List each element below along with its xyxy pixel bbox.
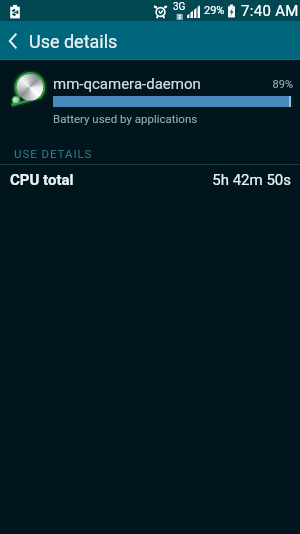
staticText: 89% [0, 78, 293, 91]
staticText: CPU total [10, 171, 74, 189]
staticText: 5h 42m 50s [75, 171, 291, 189]
button[interactable]: Back [0, 21, 25, 60]
staticText: 29% [204, 4, 225, 17]
staticText: ↕ [176, 13, 184, 20]
staticText: Battery used by applications [53, 112, 198, 125]
staticText: 3G [173, 1, 186, 13]
staticText: Use details [29, 31, 118, 52]
staticText: mm-qcamera-daemon [53, 75, 201, 93]
button[interactable]: CPU total [0, 165, 300, 195]
staticText: USE DETAILS [14, 147, 93, 160]
staticText: 7:40 AM [241, 2, 299, 20]
button[interactable]: mm-qcamera-daemon [0, 60, 300, 130]
